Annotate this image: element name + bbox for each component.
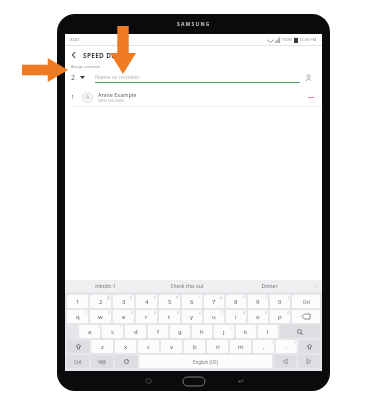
staticText: z bbox=[101, 343, 104, 351]
button[interactable]: 1 bbox=[71, 88, 316, 106]
button[interactable]: 6 bbox=[182, 295, 202, 308]
staticText: 4 bbox=[145, 298, 149, 306]
button[interactable]: 0 bbox=[270, 295, 290, 308]
button[interactable]: t bbox=[159, 310, 180, 323]
staticText: 6 bbox=[190, 298, 194, 306]
staticText: t bbox=[168, 313, 171, 321]
staticText: - bbox=[209, 326, 211, 330]
button[interactable]: Backspace bbox=[292, 310, 320, 323]
button[interactable]: 3 bbox=[113, 295, 134, 308]
staticText: 6 bbox=[199, 311, 201, 315]
button[interactable]: o bbox=[248, 310, 268, 323]
button[interactable]: Shift bbox=[299, 340, 320, 353]
button[interactable]: d bbox=[125, 325, 146, 338]
button[interactable]: s bbox=[102, 325, 123, 338]
staticText: 0 bbox=[287, 311, 289, 315]
button[interactable]: f bbox=[148, 325, 168, 338]
button[interactable]: 1 bbox=[67, 295, 88, 308]
button[interactable]: Right bbox=[298, 355, 320, 368]
staticText: u bbox=[212, 313, 216, 321]
staticText: # bbox=[130, 296, 133, 300]
button[interactable]: English (US) bbox=[139, 355, 272, 368]
staticText: h bbox=[200, 328, 204, 336]
staticText: 7 bbox=[221, 311, 223, 315]
staticText: 1 bbox=[76, 298, 80, 306]
button[interactable]: More bbox=[310, 280, 322, 292]
button[interactable]: Ctrl bbox=[67, 355, 89, 368]
button[interactable]: Remove bbox=[306, 92, 316, 102]
button[interactable]: mktdlc-1 bbox=[65, 280, 146, 292]
button[interactable]: , bbox=[253, 340, 274, 353]
button[interactable]: Emoji bbox=[115, 355, 137, 368]
button[interactable]: Recents bbox=[135, 371, 161, 391]
staticText: f bbox=[157, 328, 160, 336]
button[interactable]: g bbox=[170, 325, 190, 338]
staticText: n bbox=[216, 343, 220, 351]
staticText: : bbox=[166, 326, 167, 330]
staticText: 9 bbox=[265, 311, 267, 315]
staticText: r bbox=[145, 313, 148, 321]
button[interactable]: x bbox=[115, 340, 136, 353]
button[interactable]: 5 bbox=[159, 295, 180, 308]
button[interactable]: y bbox=[182, 310, 202, 323]
button[interactable]: a bbox=[79, 325, 100, 338]
button[interactable]: n bbox=[207, 340, 228, 353]
button[interactable]: u bbox=[204, 310, 224, 323]
button[interactable]: Left bbox=[274, 355, 296, 368]
staticText: Dinner bbox=[261, 283, 278, 290]
staticText: w bbox=[98, 313, 103, 321]
staticText: p bbox=[278, 313, 282, 321]
staticText: SAMSUNG bbox=[177, 21, 211, 28]
staticText: 2 bbox=[71, 73, 76, 83]
button[interactable]: 2 bbox=[90, 295, 111, 308]
button[interactable]: c bbox=[138, 340, 159, 353]
staticText: 4 bbox=[154, 311, 156, 315]
staticText: o bbox=[256, 313, 260, 321]
button[interactable]: 8 bbox=[226, 295, 246, 308]
button[interactable]: h bbox=[192, 325, 212, 338]
staticText: m bbox=[238, 343, 244, 351]
staticText: q bbox=[76, 313, 80, 321]
staticText: + bbox=[231, 326, 233, 330]
button[interactable]: p bbox=[270, 310, 290, 323]
button[interactable]: Dinner bbox=[228, 280, 310, 292]
button[interactable]: i bbox=[226, 310, 246, 323]
button[interactable]: z bbox=[91, 340, 113, 353]
button[interactable]: 4 bbox=[136, 295, 157, 308]
button[interactable]: k bbox=[236, 325, 256, 338]
staticText: s bbox=[111, 328, 114, 336]
button[interactable]: !#@ bbox=[91, 355, 113, 368]
staticText: 100% bbox=[282, 37, 293, 42]
staticText: 0 bbox=[278, 298, 282, 306]
button[interactable]: r bbox=[136, 310, 157, 323]
staticText: " bbox=[120, 326, 122, 330]
button[interactable]: Back bbox=[65, 46, 83, 64]
button[interactable]: 9 bbox=[248, 295, 268, 308]
button[interactable]: 2 bbox=[71, 71, 95, 84]
button[interactable]: . bbox=[276, 340, 297, 353]
button[interactable]: Del bbox=[292, 295, 320, 308]
button[interactable]: Contacts bbox=[300, 71, 316, 84]
button[interactable]: q bbox=[67, 310, 88, 323]
button[interactable]: Home bbox=[177, 373, 211, 389]
button[interactable]: Name or number bbox=[95, 73, 300, 83]
button[interactable]: e bbox=[113, 310, 134, 323]
button[interactable]: Check this out bbox=[146, 280, 228, 292]
staticText: j bbox=[223, 328, 225, 336]
button[interactable]: 7 bbox=[204, 295, 224, 308]
button[interactable]: Back bbox=[65, 46, 322, 64]
staticText: AT&T bbox=[70, 37, 80, 42]
staticText: * bbox=[243, 296, 245, 300]
button[interactable]: l bbox=[258, 325, 278, 338]
button[interactable]: Back bbox=[227, 371, 253, 391]
staticText: Assign contacts bbox=[71, 64, 101, 69]
button[interactable]: v bbox=[161, 340, 182, 353]
button[interactable]: Shift bbox=[67, 340, 89, 353]
staticText: ? bbox=[294, 341, 296, 345]
button[interactable]: w bbox=[90, 310, 111, 323]
button[interactable]: m bbox=[230, 340, 251, 353]
button[interactable]: b bbox=[184, 340, 205, 353]
button[interactable]: Search bbox=[280, 325, 320, 338]
staticText: ~ bbox=[85, 296, 87, 300]
button[interactable]: j bbox=[214, 325, 234, 338]
